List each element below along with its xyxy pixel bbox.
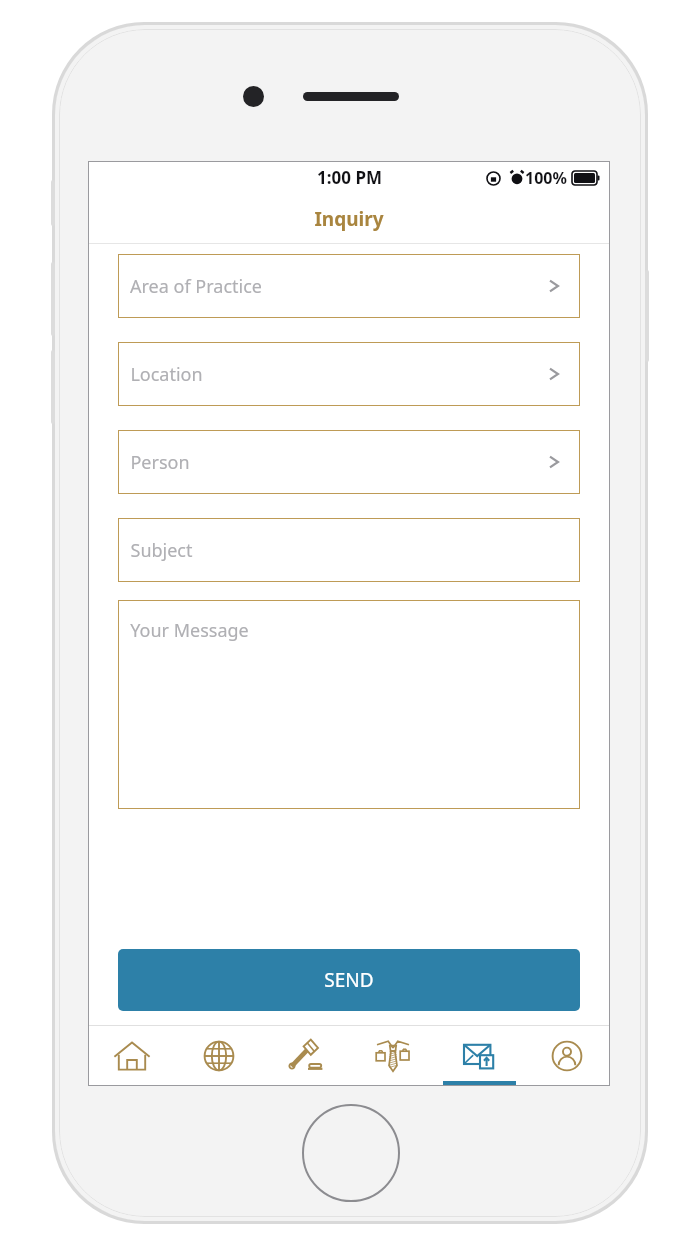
button[interactable]: Global (175, 1026, 262, 1086)
staticText: Location (130, 362, 203, 387)
staticText: Subject (130, 538, 193, 563)
button[interactable]: Your Message (118, 600, 580, 809)
staticText: 1:00 PM (317, 166, 382, 189)
button[interactable]: Professionals (349, 1026, 436, 1086)
button[interactable]: Cases (262, 1026, 349, 1086)
button[interactable]: Area of Practice (118, 254, 580, 318)
staticText: Inquiry (314, 206, 384, 232)
staticText: 100% (525, 167, 567, 189)
button[interactable]: SEND (118, 949, 580, 1011)
staticText: SEND (324, 967, 374, 993)
button[interactable]: Inquiry (436, 1026, 523, 1086)
button[interactable]: Location (118, 342, 580, 406)
button[interactable]: Home (88, 1026, 175, 1086)
button[interactable]: Subject (118, 518, 580, 582)
staticText: Person (130, 450, 190, 475)
staticText: Area of Practice (130, 274, 262, 299)
button[interactable]: Person (118, 430, 580, 494)
staticText: Your Message (130, 618, 249, 643)
button[interactable]: Profile (523, 1026, 610, 1086)
